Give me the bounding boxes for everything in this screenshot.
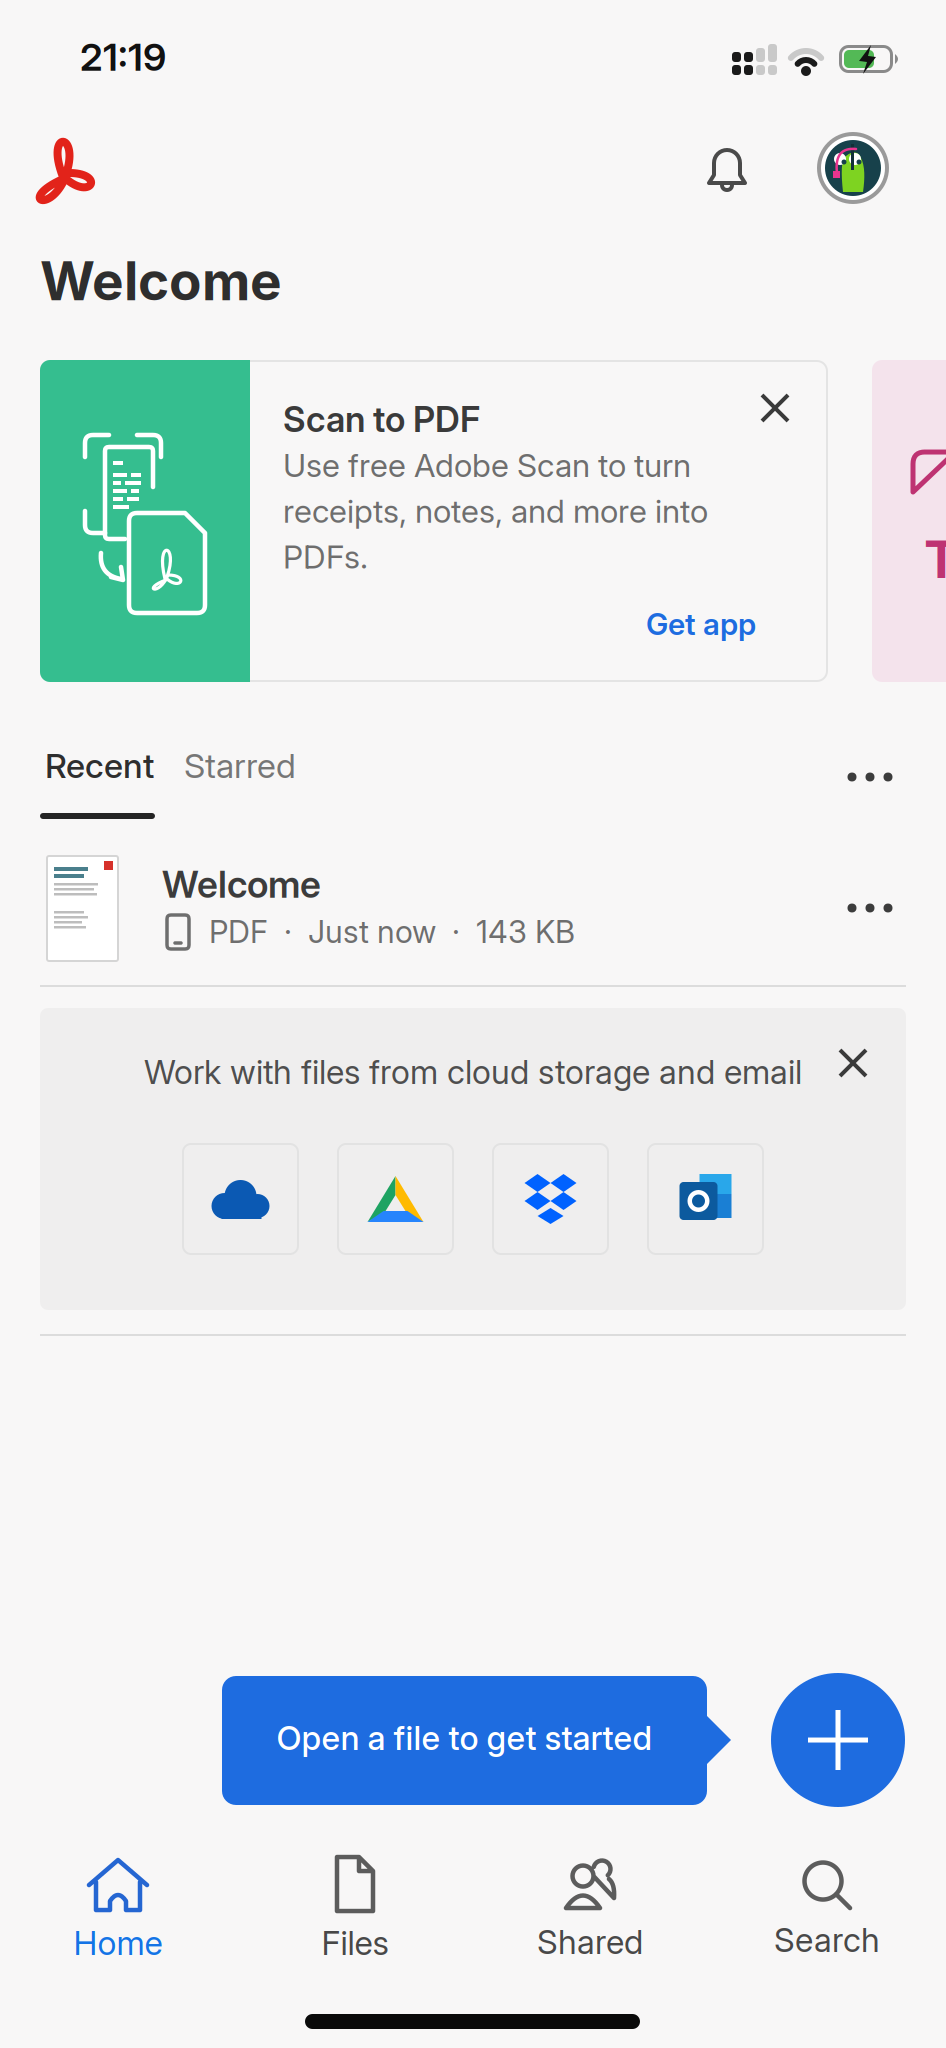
button[interactable]: Starred (184, 745, 296, 786)
button[interactable]: Search (727, 1855, 927, 1965)
button[interactable]: Recent (45, 745, 154, 786)
staticText: Recent (45, 745, 154, 786)
button[interactable]: Dismiss (828, 1038, 878, 1088)
button[interactable]: Profile (817, 132, 889, 204)
button[interactable]: File options (846, 884, 894, 932)
staticText: Open a file to get started (276, 1718, 652, 1758)
staticText: Get app (646, 606, 756, 642)
button[interactable]: Home (18, 1855, 218, 1965)
staticText: Search (774, 1920, 880, 1960)
staticText: Files (321, 1923, 388, 1963)
staticText: Work with files from cloud storage and e… (144, 1052, 802, 1092)
button[interactable]: Outlook (647, 1143, 764, 1255)
staticText: Welcome (162, 862, 321, 907)
staticText: 21:19 (80, 34, 166, 80)
button[interactable]: Welcome (0, 855, 820, 962)
button[interactable]: Dismiss (750, 383, 800, 433)
button[interactable]: Get app (638, 600, 764, 648)
button[interactable]: More options (846, 753, 894, 801)
button[interactable]: Google Drive (337, 1143, 454, 1255)
button[interactable]: Shared (490, 1855, 690, 1965)
button[interactable]: Notifications (699, 140, 755, 196)
staticText: PDF · Just now · 143 KB (209, 913, 575, 950)
staticText: Starred (184, 745, 296, 786)
staticText: Welcome (40, 249, 282, 313)
staticText: Scan to PDF (283, 398, 480, 440)
staticText: Use free Adobe Scan to turn receipts, no… (283, 446, 708, 576)
button[interactable]: OneDrive (182, 1143, 299, 1255)
staticText: Home (73, 1923, 162, 1963)
button[interactable]: Dropbox (492, 1143, 609, 1255)
staticText: T (924, 528, 946, 591)
button[interactable]: Files (255, 1855, 455, 1965)
staticText: Shared (537, 1922, 643, 1962)
button[interactable]: Create (771, 1673, 905, 1807)
